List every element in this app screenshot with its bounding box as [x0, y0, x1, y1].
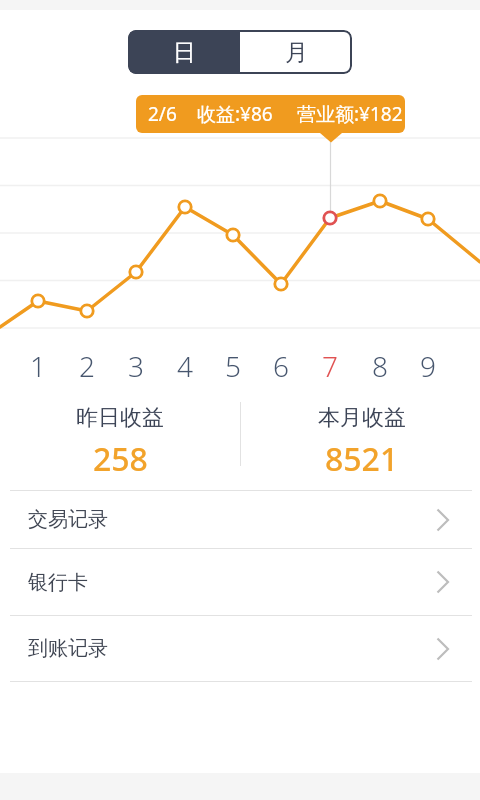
staticText: 5 [225, 347, 241, 377]
staticText: 4 [177, 347, 193, 377]
staticText: 2/6 [148, 101, 177, 127]
staticText: 月 [285, 38, 308, 67]
staticText: 日 [173, 38, 196, 67]
staticText: 3 [128, 347, 144, 377]
button[interactable]: 银行卡 [0, 549, 480, 615]
staticText: 银行卡 [28, 570, 88, 595]
staticText: 6 [273, 347, 289, 377]
button[interactable]: 到账记录 [0, 616, 480, 681]
staticText: 交易记录 [28, 507, 108, 532]
staticText: 7 [322, 347, 338, 377]
staticText: 营业额:¥182 [297, 101, 403, 127]
staticText: 1 [30, 347, 46, 377]
staticText: 258 [93, 437, 148, 475]
staticText: 2 [79, 347, 95, 377]
button[interactable]: 交易记录 [0, 491, 480, 548]
staticText: 8 [372, 347, 388, 377]
staticText: 9 [420, 347, 436, 377]
staticText: 8521 [325, 437, 399, 475]
button[interactable]: 月 [240, 30, 352, 74]
staticText: 收益:¥86 [197, 101, 273, 127]
staticText: 到账记录 [28, 636, 108, 661]
staticText: 昨日收益 [76, 404, 164, 428]
staticText: 本月收益 [318, 404, 406, 428]
button[interactable]: 日 [128, 30, 240, 74]
